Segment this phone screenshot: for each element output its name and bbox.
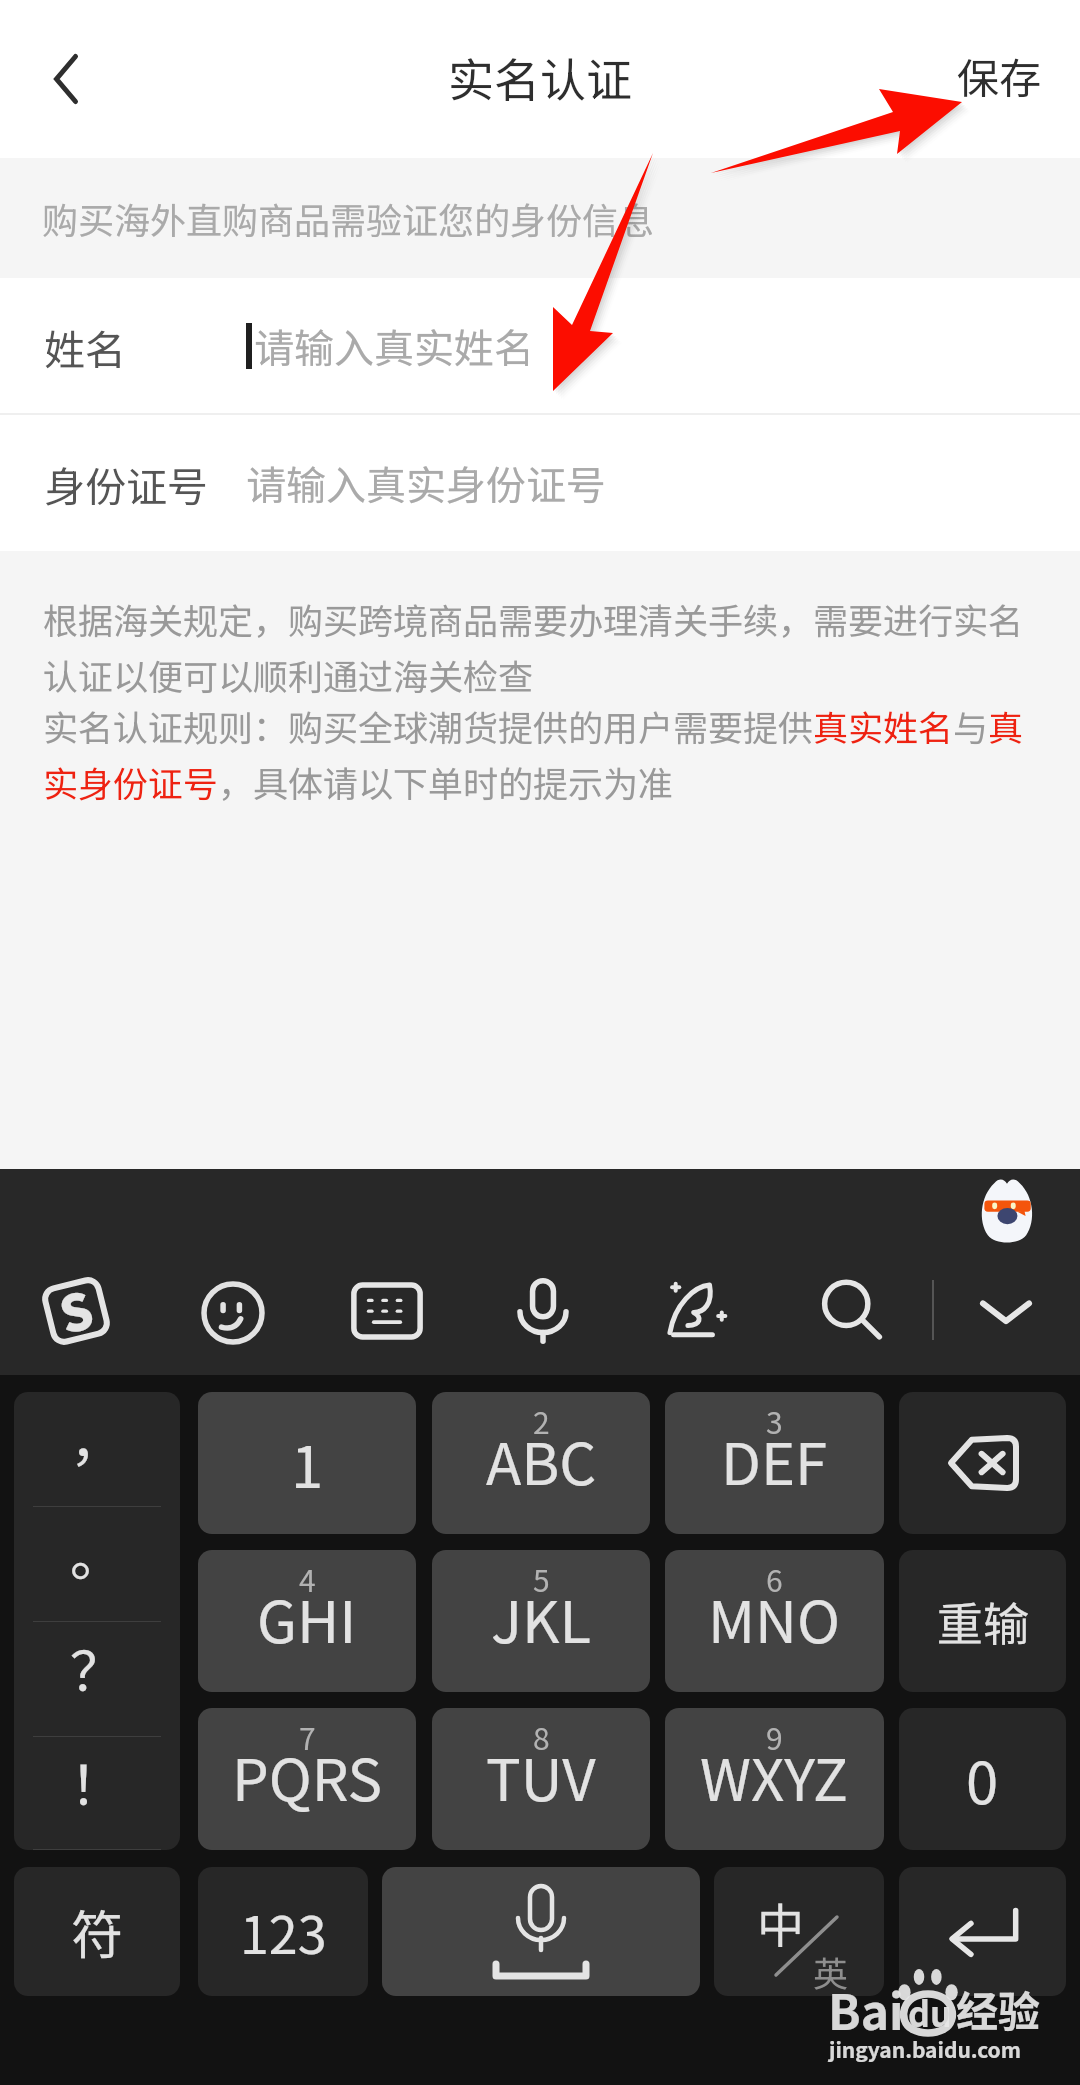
staticText: 英 bbox=[813, 1946, 849, 1996]
button[interactable]: Handwriting bbox=[662, 1275, 734, 1347]
button[interactable]: 8 bbox=[432, 1708, 650, 1850]
staticText: 请输入真实身份证号 bbox=[246, 454, 606, 512]
staticText: 0 bbox=[966, 1737, 999, 1821]
button[interactable]: ， bbox=[14, 1392, 180, 1850]
staticText: GHI bbox=[257, 1576, 357, 1660]
staticText: WXYZ bbox=[700, 1734, 849, 1818]
button[interactable]: Back bbox=[13, 26, 118, 131]
staticText: TUV bbox=[486, 1734, 596, 1818]
staticText: 身份证号 bbox=[44, 454, 208, 513]
button[interactable]: Emoji bbox=[197, 1275, 269, 1347]
staticText: Bai bbox=[828, 1974, 904, 2044]
button[interactable]: 9 bbox=[665, 1708, 884, 1850]
button[interactable]: Voice input bbox=[507, 1275, 579, 1347]
button[interactable]: 重输 bbox=[899, 1550, 1066, 1692]
button[interactable]: 3 bbox=[665, 1392, 884, 1534]
staticText: ！ bbox=[70, 1742, 124, 1820]
staticText: DEF bbox=[721, 1418, 828, 1502]
staticText: 实名认证规则：购买全球潮货提供的用户需要提供真实姓名与真实身份证号，具体请以下单… bbox=[43, 700, 1048, 807]
button[interactable]: 7 bbox=[198, 1708, 416, 1850]
staticText: 9 bbox=[766, 1715, 783, 1758]
button[interactable]: 2 bbox=[432, 1392, 650, 1534]
button[interactable]: 保存 bbox=[931, 15, 1068, 136]
staticText: PQRS bbox=[232, 1734, 383, 1818]
button[interactable]: Backspace bbox=[899, 1392, 1066, 1534]
button[interactable]: Search bbox=[816, 1275, 888, 1347]
staticText: 请输入真实姓名 bbox=[254, 317, 534, 375]
staticText: 保存 bbox=[957, 45, 1042, 106]
staticText: 购买海外直购商品需验证您的身份信息 bbox=[42, 192, 655, 244]
button[interactable]: 1 bbox=[198, 1392, 416, 1534]
button[interactable]: Sogou bbox=[40, 1275, 112, 1347]
button[interactable]: Space bbox=[382, 1867, 700, 1996]
staticText: ABC bbox=[486, 1418, 597, 1502]
button[interactable]: 123 bbox=[198, 1867, 368, 1996]
button[interactable]: 6 bbox=[665, 1550, 884, 1692]
button[interactable]: 符 bbox=[14, 1867, 180, 1996]
staticText: ， bbox=[70, 1398, 124, 1476]
staticText: du bbox=[908, 1988, 952, 2037]
button[interactable]: 身份证号 bbox=[0, 415, 1080, 551]
staticText: 123 bbox=[240, 1894, 327, 1969]
staticText: 中 bbox=[757, 1888, 804, 1956]
button[interactable]: Keyboard bbox=[351, 1275, 423, 1347]
staticText: 6 bbox=[766, 1557, 783, 1600]
button[interactable]: Hide keyboard bbox=[970, 1275, 1042, 1347]
staticText: 4 bbox=[299, 1557, 316, 1600]
staticText: 2 bbox=[533, 1399, 550, 1442]
staticText: 重输 bbox=[937, 1588, 1029, 1655]
button[interactable]: Chinese English toggle bbox=[714, 1867, 884, 1996]
staticText: 7 bbox=[299, 1715, 316, 1758]
staticText: 根据海关规定，购买跨境商品需要办理清关手续，需要进行实名认证以便可以顺利通过海关… bbox=[43, 593, 1048, 700]
staticText: 8 bbox=[533, 1715, 550, 1758]
staticText: jingyan.baidu.com bbox=[829, 2034, 1021, 2064]
staticText: 实名认证 bbox=[448, 44, 632, 111]
staticText: 1 bbox=[291, 1421, 324, 1505]
button[interactable]: Enter bbox=[899, 1867, 1066, 1996]
staticText: JKL bbox=[491, 1576, 591, 1660]
staticText: 3 bbox=[766, 1399, 783, 1442]
staticText: 。 bbox=[70, 1513, 124, 1591]
staticText: 5 bbox=[533, 1557, 550, 1600]
staticText: 姓名 bbox=[44, 317, 126, 376]
button[interactable]: 4 bbox=[198, 1550, 416, 1692]
button[interactable]: 0 bbox=[899, 1708, 1066, 1850]
button[interactable]: 姓名 bbox=[0, 278, 1080, 414]
button[interactable]: 5 bbox=[432, 1550, 650, 1692]
staticText: ？ bbox=[70, 1628, 124, 1706]
staticText: S bbox=[51, 1270, 100, 1348]
staticText: MNO bbox=[708, 1576, 841, 1660]
staticText: 符 bbox=[71, 1894, 124, 1969]
staticText: 经验 bbox=[956, 1978, 1041, 2039]
